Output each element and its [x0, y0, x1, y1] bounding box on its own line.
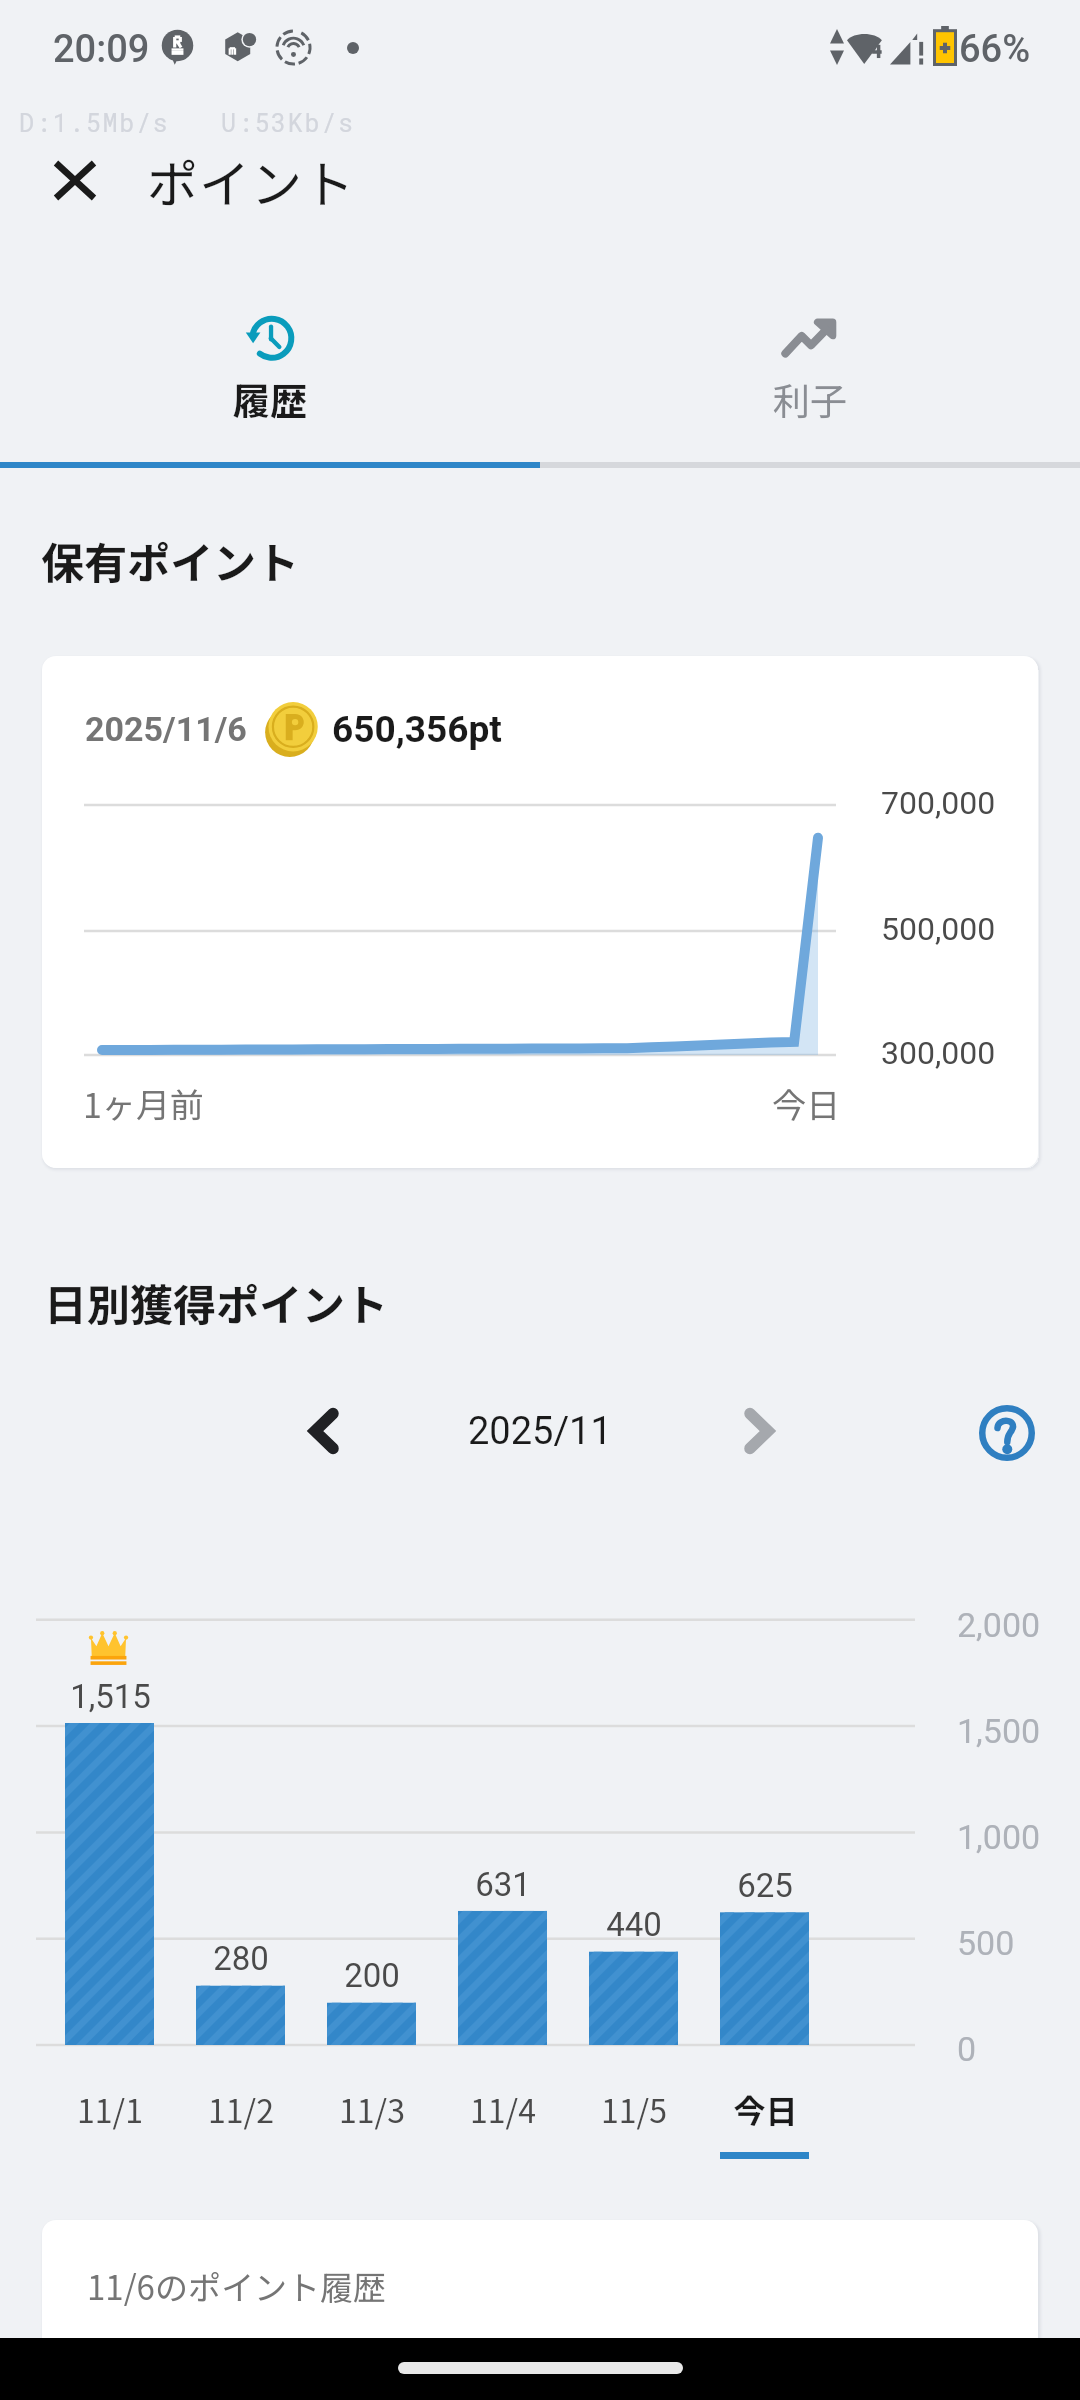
- button[interactable]: 履歴: [0, 250, 540, 462]
- staticText: 2,000: [957, 1605, 1041, 1645]
- staticText: 日別獲得ポイント: [44, 1271, 388, 1333]
- staticText: U:53Kb/s: [221, 106, 355, 139]
- button[interactable]: 11/4: [438, 1618, 568, 2163]
- staticText: 200: [344, 1956, 400, 1995]
- staticText: 631: [475, 1865, 531, 1904]
- button[interactable]: ヘルプ: [967, 1393, 1047, 1473]
- button[interactable]: 次の月: [718, 1390, 800, 1472]
- staticText: 66%: [959, 27, 1031, 72]
- staticText: 500,000: [881, 910, 996, 948]
- staticText: 440: [606, 1905, 662, 1944]
- staticText: 280: [213, 1939, 269, 1978]
- staticText: 11/4: [470, 2086, 536, 2132]
- button[interactable]: 11/5: [569, 1618, 699, 2163]
- staticText: 利子: [773, 372, 847, 426]
- staticText: 今日: [772, 1079, 840, 1128]
- staticText: 11/3: [339, 2086, 405, 2132]
- staticText: 1,500: [957, 1711, 1041, 1751]
- button[interactable]: 11/6のポイント履歴: [42, 2220, 1038, 2400]
- staticText: 保有ポイント: [41, 529, 299, 591]
- staticText: 2025/11/6: [85, 709, 247, 749]
- staticText: 0: [957, 2029, 977, 2069]
- staticText: 625: [737, 1866, 793, 1905]
- staticText: 20:09: [53, 27, 150, 72]
- button[interactable]: 11/3: [307, 1618, 437, 2163]
- staticText: 500: [957, 1923, 1015, 1963]
- staticText: 11/1: [77, 2086, 143, 2132]
- staticText: D:1.5Mb/s: [19, 106, 170, 139]
- staticText: 1ヶ月前: [83, 1079, 204, 1128]
- button[interactable]: 11/1: [45, 1618, 175, 2163]
- button[interactable]: 前の月: [283, 1390, 365, 1472]
- staticText: 2025/11: [468, 1409, 612, 1454]
- staticText: 履歴: [233, 372, 307, 426]
- staticText: ポイント: [147, 144, 356, 218]
- staticText: 300,000: [881, 1034, 996, 1072]
- staticText: 700,000: [881, 784, 996, 822]
- staticText: 1,515: [70, 1677, 151, 1716]
- staticText: 今日: [733, 2086, 798, 2132]
- button[interactable]: 今日: [700, 1618, 830, 2163]
- staticText: 1,000: [957, 1817, 1041, 1857]
- staticText: 11/6のポイント履歴: [87, 2262, 386, 2310]
- button[interactable]: 閉じる: [27, 132, 123, 228]
- staticText: 11/2: [208, 2086, 274, 2132]
- button[interactable]: 11/2: [176, 1618, 306, 2163]
- staticText: 11/5: [601, 2086, 667, 2132]
- button[interactable]: 利子: [540, 250, 1080, 462]
- staticText: 650,356pt: [332, 708, 502, 751]
